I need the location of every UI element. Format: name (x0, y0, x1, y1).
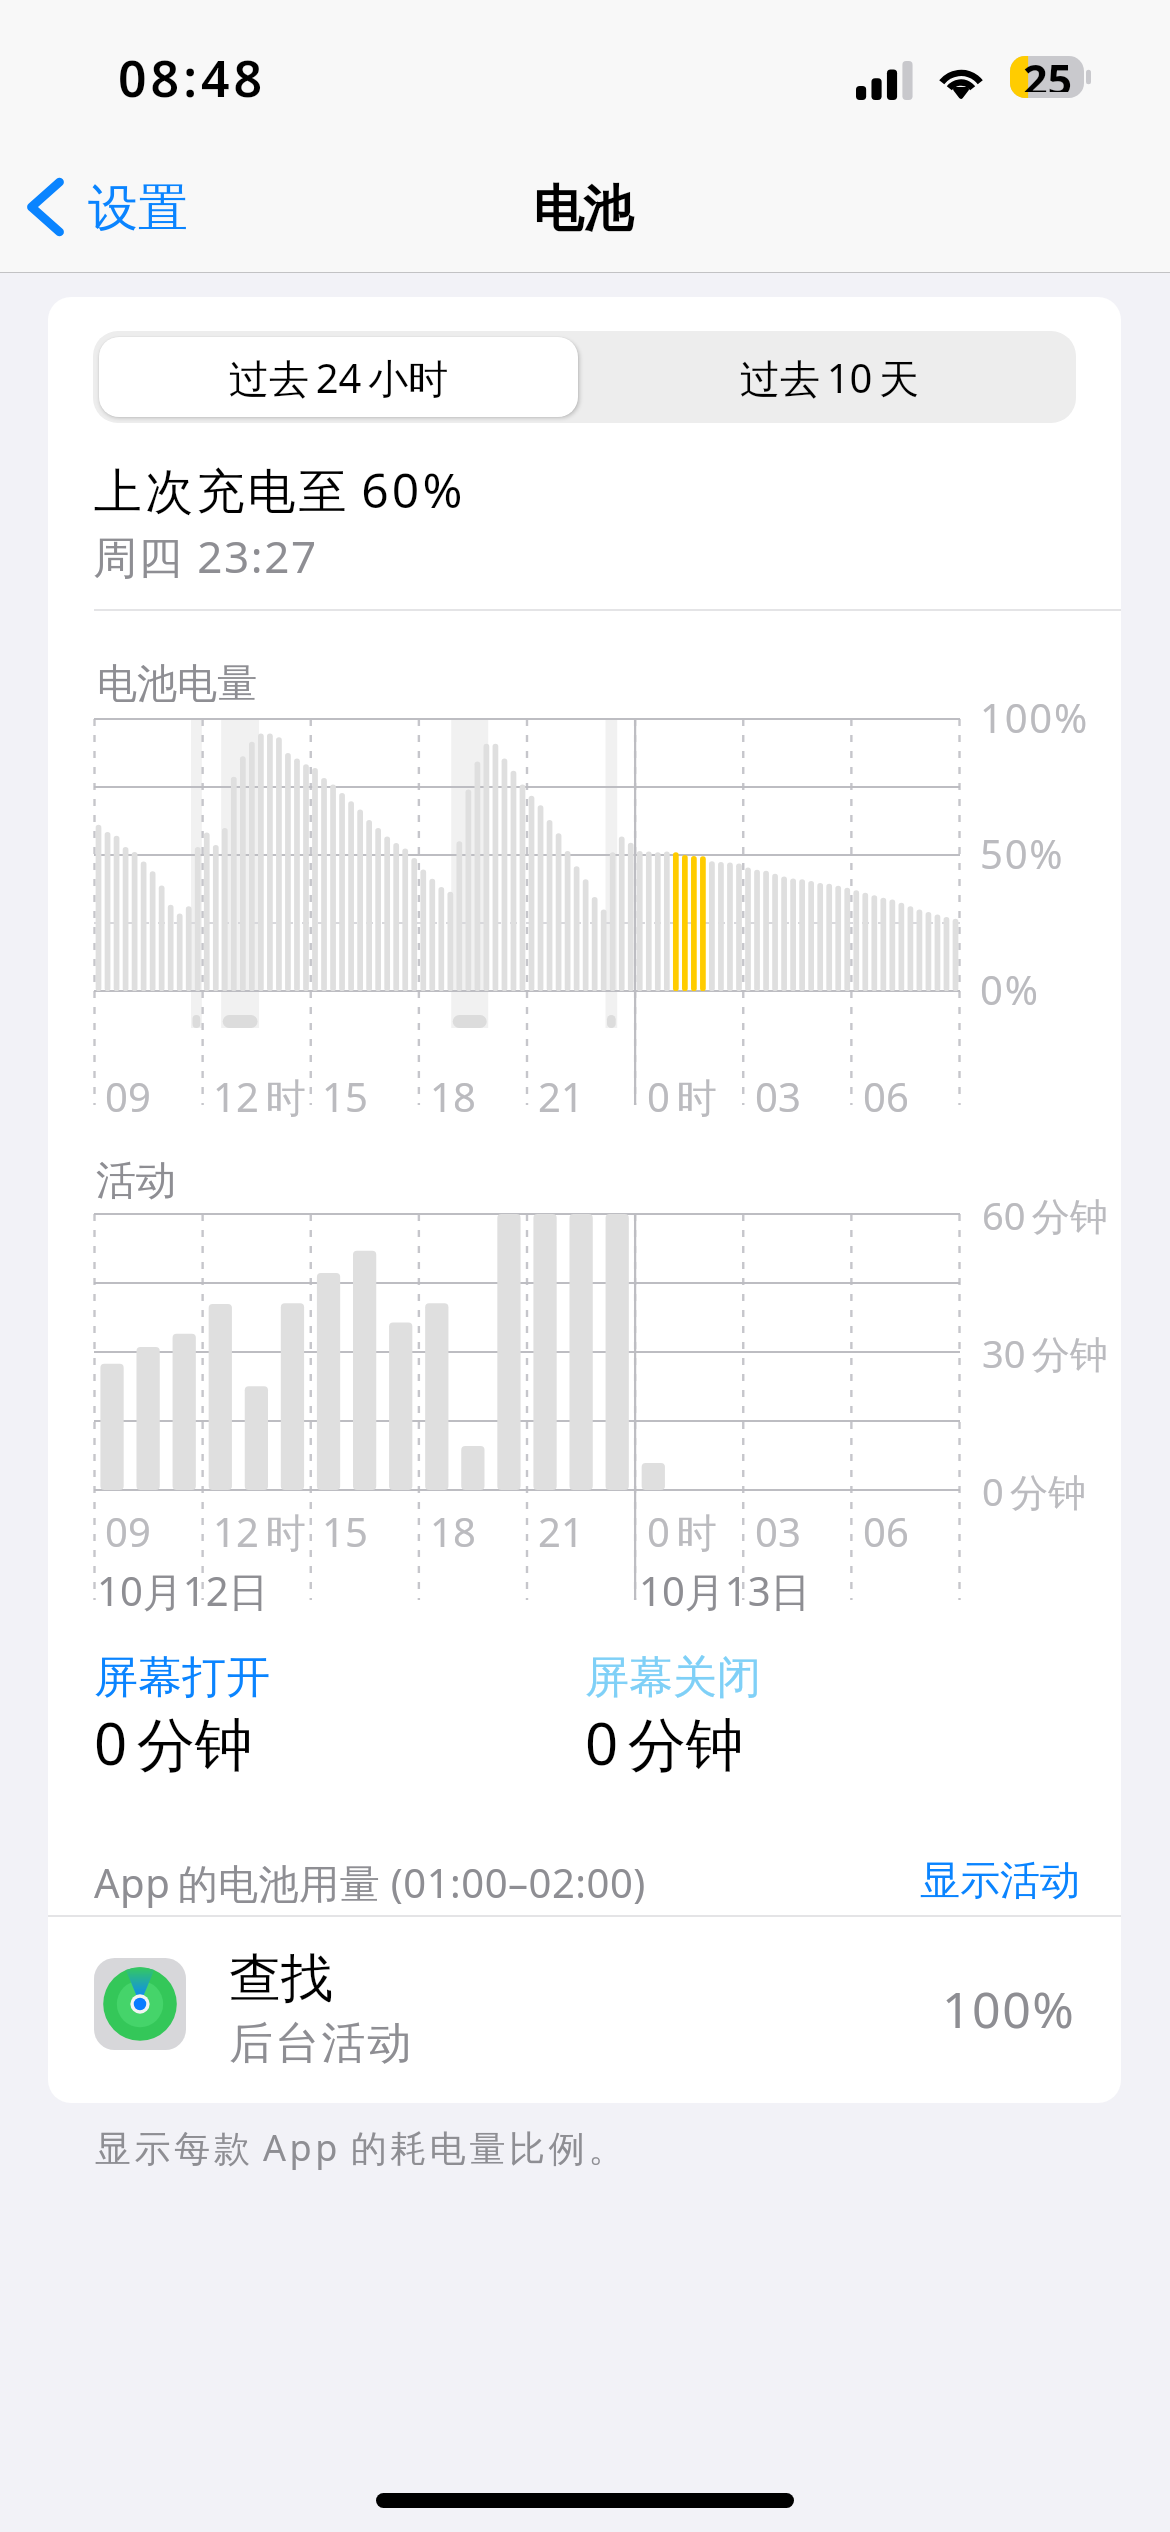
staticText: 10月12日 (97, 1563, 269, 1618)
staticText: 屏幕打开 (94, 1650, 270, 1705)
staticText: 15 (322, 1504, 368, 1558)
other: Cellular signal (856, 61, 914, 100)
staticText: 12 时 (213, 1069, 306, 1124)
staticText: 0 分钟 (982, 1465, 1087, 1517)
staticText: 0 分钟 (94, 1703, 253, 1782)
staticText: 08:48 (118, 44, 267, 112)
other: Battery 25 percent (1010, 56, 1092, 98)
staticText: 18 (430, 1504, 476, 1558)
staticText: 设置 (88, 177, 188, 240)
staticText: 18 (430, 1069, 476, 1123)
staticText: 0 时 (647, 1504, 717, 1559)
staticText: 09 (105, 1504, 151, 1558)
staticText: 显示活动 (920, 1855, 1080, 1905)
staticText: 100% (980, 690, 1090, 744)
staticText: 过去 24 小时 (229, 350, 449, 405)
staticText: 活动 (96, 1155, 176, 1205)
button[interactable]: 查找 (48, 1917, 1121, 2088)
staticText: 50% (980, 826, 1065, 880)
staticText: 30 分钟 (982, 1327, 1108, 1379)
button[interactable]: 过去 10 天 (584, 331, 1076, 423)
staticText: 过去 10 天 (740, 350, 920, 405)
button[interactable]: 显示活动 (912, 1849, 1088, 1911)
staticText: 电池 (533, 178, 633, 241)
staticText: 0 时 (647, 1069, 717, 1124)
staticText: 60 分钟 (982, 1189, 1108, 1241)
staticText: 显示每款 App 的耗电量比例。 (95, 2123, 628, 2172)
staticText: 10月13日 (639, 1563, 811, 1618)
staticText: 21 (538, 1504, 584, 1558)
staticText: 周四 23:27 (93, 526, 318, 586)
other: Wi-Fi (935, 56, 987, 95)
staticText: 21 (538, 1069, 584, 1123)
button[interactable]: Back to Settings (19, 169, 202, 244)
staticText: 03 (755, 1504, 801, 1558)
staticText: 06 (863, 1504, 909, 1558)
staticText: 后台活动 (229, 2016, 414, 2071)
staticText: 上次充电至 60% (94, 457, 466, 523)
staticText: 100% (942, 1975, 1076, 2043)
staticText: 0 分钟 (585, 1703, 744, 1782)
staticText: 09 (105, 1069, 151, 1123)
staticText: 查找 (229, 1946, 333, 2012)
staticText: 屏幕关闭 (585, 1650, 761, 1705)
staticText: 15 (322, 1069, 368, 1123)
staticText: 电池电量 (97, 658, 257, 708)
staticText: 12 时 (213, 1504, 306, 1559)
staticText: 06 (863, 1069, 909, 1123)
other: Back to Settings (27, 177, 64, 237)
staticText: App 的电池用量 (01:00–02:00) (94, 1855, 646, 1910)
staticText: 03 (755, 1069, 801, 1123)
button[interactable]: 过去 24 小时 (99, 337, 578, 417)
staticText: 0% (980, 962, 1040, 1016)
staticText: 25 (1023, 50, 1073, 92)
